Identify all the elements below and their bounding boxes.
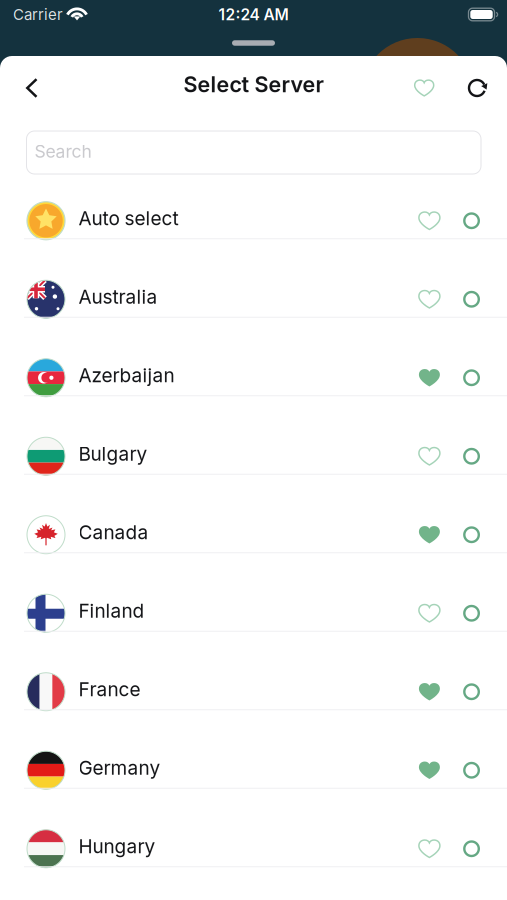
button[interactable]: Toggle favourite Auto select [415, 204, 444, 237]
staticText: Finland [78, 599, 144, 622]
button[interactable]: Select Hungary [460, 833, 483, 864]
staticText: 12:24 AM [218, 5, 288, 24]
button[interactable]: Hungary [27, 830, 415, 868]
button[interactable]: Germany [27, 751, 415, 789]
staticText: Bulgary [78, 442, 147, 465]
button[interactable]: Toggle favourite Germany [415, 753, 444, 787]
button[interactable]: Toggle favourite Canada [415, 518, 444, 551]
button[interactable]: Toggle favourite France [415, 675, 444, 708]
staticText: Carrier [13, 5, 63, 23]
button[interactable]: Azerbaijan [27, 359, 415, 397]
button[interactable]: Select France [460, 676, 483, 707]
button[interactable]: Search [26, 131, 481, 174]
staticText: Germany [78, 756, 160, 779]
staticText: France [78, 678, 140, 701]
button[interactable]: Toggle favourite Australia [415, 282, 444, 316]
button[interactable]: Toggle favourite Finland [415, 596, 444, 630]
button[interactable]: Bulgary [27, 437, 415, 475]
staticText: Azerbaijan [78, 364, 174, 387]
button[interactable]: Toggle favourite Hungary [415, 832, 444, 865]
button[interactable]: Select Bulgary [460, 441, 483, 471]
button[interactable]: Finland [27, 594, 415, 632]
staticText: Search [34, 141, 91, 162]
button[interactable]: Auto select [27, 202, 415, 240]
staticText: Select Server [183, 71, 323, 97]
button[interactable]: Toggle favourite Azerbaijan [415, 361, 444, 394]
button[interactable]: Toggle favourite Bulgary [415, 439, 444, 473]
button[interactable]: Select Finland [460, 598, 483, 628]
button[interactable]: Australia [27, 280, 415, 318]
button[interactable]: Canada [27, 516, 415, 554]
button[interactable]: Select Auto select [460, 205, 483, 236]
button[interactable]: Select Azerbaijan [460, 362, 483, 393]
staticText: Canada [78, 521, 148, 544]
staticText: Hungary [78, 835, 155, 858]
staticText: Auto select [78, 207, 178, 230]
button[interactable]: Favourites [415, 66, 434, 110]
button[interactable]: Refresh [467, 64, 486, 111]
button[interactable]: Select Germany [460, 755, 483, 785]
button[interactable]: Back [0, 62, 38, 114]
staticText: Australia [78, 285, 157, 308]
button[interactable]: France [27, 673, 415, 711]
button[interactable]: Select Canada [460, 519, 483, 550]
button[interactable]: Select Australia [460, 284, 483, 314]
